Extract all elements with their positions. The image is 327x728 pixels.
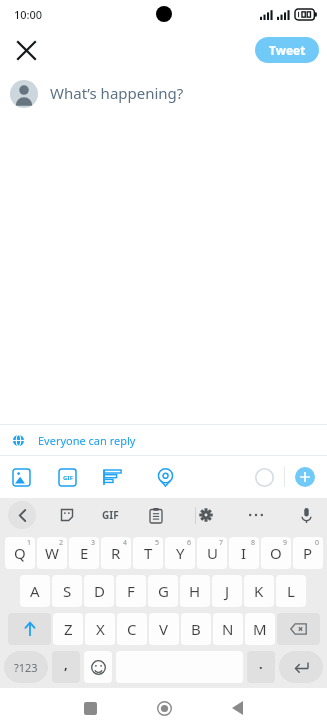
button[interactable]: I [229, 537, 259, 569]
button[interactable]: B [181, 613, 211, 645]
button[interactable]: Recent apps [76, 694, 104, 722]
button[interactable]: Add GIF [52, 462, 82, 492]
button[interactable]: U [197, 537, 227, 569]
button[interactable]: J [212, 575, 242, 607]
staticText: 4 [123, 538, 128, 548]
button[interactable]: T [133, 537, 163, 569]
staticText: 5 [155, 538, 160, 548]
button[interactable]: P [293, 537, 323, 569]
button[interactable]: Stickers [54, 502, 80, 528]
button[interactable]: Tweet [255, 37, 319, 63]
button[interactable]: . [247, 651, 275, 683]
button[interactable]: GIF [102, 502, 119, 528]
staticText: X [96, 619, 105, 639]
button[interactable]: C [117, 613, 147, 645]
button[interactable]: Settings [193, 502, 219, 528]
button[interactable]: M [245, 613, 275, 645]
staticText: ?123 [14, 660, 38, 675]
staticText: 2 [59, 538, 64, 548]
button[interactable]: More options [243, 502, 269, 528]
staticText: 8 [251, 538, 256, 548]
staticText: W [45, 543, 59, 563]
button[interactable]: Z [53, 613, 83, 645]
button[interactable]: S [52, 575, 82, 607]
staticText: J [225, 581, 230, 601]
staticText: H [189, 581, 201, 601]
staticText: Tweet [269, 42, 306, 58]
staticText: O [270, 543, 282, 563]
staticText: 9 [283, 538, 288, 548]
button[interactable]: Backspace [277, 613, 320, 645]
staticText: D [94, 581, 105, 601]
staticText: GIF [63, 474, 73, 482]
button[interactable]: V [149, 613, 179, 645]
button[interactable]: O [261, 537, 291, 569]
button[interactable]: Clipboard [143, 502, 169, 528]
button[interactable]: Shift [8, 613, 51, 645]
button[interactable]: Y [165, 537, 195, 569]
staticText: B [191, 619, 201, 639]
button[interactable]: Back [8, 501, 36, 529]
button[interactable]: Emoji [84, 651, 112, 683]
staticText: GIF [102, 508, 119, 522]
staticText: U [207, 543, 218, 563]
button[interactable]: ?123 [4, 651, 48, 683]
button[interactable]: G [148, 575, 178, 607]
staticText: 1 [27, 538, 32, 548]
button[interactable]: K [244, 575, 274, 607]
button[interactable]: D [84, 575, 114, 607]
staticText: 3 [91, 538, 96, 548]
button[interactable]: Character count [250, 463, 278, 491]
button[interactable]: Close [6, 30, 46, 70]
staticText: N [222, 619, 234, 639]
button[interactable]: Back [223, 694, 251, 722]
button[interactable]: H [180, 575, 210, 607]
button[interactable]: Add location [150, 462, 180, 492]
staticText: Y [176, 543, 185, 563]
staticText: 7 [219, 538, 224, 548]
staticText: A [30, 581, 40, 601]
button[interactable]: A [20, 575, 50, 607]
staticText: 6 [187, 538, 192, 548]
staticText: P [303, 543, 313, 563]
button[interactable]: L [276, 575, 306, 607]
staticText: T [144, 543, 153, 563]
button[interactable]: Voice input [293, 502, 319, 528]
button[interactable]: Home [150, 694, 178, 722]
staticText: 0 [315, 538, 320, 548]
staticText: S [63, 581, 72, 601]
button[interactable]: R [101, 537, 131, 569]
button[interactable]: Everyone can reply [0, 425, 327, 455]
button[interactable]: Q [5, 537, 35, 569]
button[interactable]: N [213, 613, 243, 645]
staticText: R [111, 543, 121, 563]
staticText: G [158, 581, 169, 601]
staticText: M [253, 619, 267, 639]
button[interactable]: F [116, 575, 146, 607]
staticText: I [241, 543, 247, 563]
button[interactable]: Add poll [98, 462, 128, 492]
button[interactable]: E [69, 537, 99, 569]
staticText: K [254, 581, 264, 601]
staticText: L [287, 581, 295, 601]
staticText: What’s happening? [50, 83, 184, 103]
button[interactable]: , [52, 651, 80, 683]
staticText: 10:00 [14, 7, 43, 22]
button[interactable]: Profile picture [10, 80, 38, 108]
staticText: E [80, 543, 89, 563]
button[interactable]: Add tweet [291, 463, 319, 491]
staticText: Everyone can reply [38, 433, 136, 448]
staticText: . [259, 655, 263, 673]
button[interactable]: Enter [279, 651, 323, 683]
staticText: C [127, 619, 137, 639]
staticText: V [159, 619, 169, 639]
staticText: F [127, 581, 135, 601]
button[interactable]: X [85, 613, 115, 645]
button[interactable]: Add photo [6, 462, 36, 492]
staticText: , [64, 655, 68, 673]
staticText: Z [64, 619, 73, 639]
button[interactable]: W [37, 537, 67, 569]
staticText: Q [14, 543, 26, 563]
